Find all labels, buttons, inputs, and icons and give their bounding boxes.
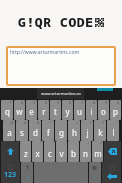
staticText: v	[59, 148, 64, 159]
button[interactable]: Shift	[1, 141, 19, 162]
staticText: e	[29, 106, 34, 117]
staticText: http://www.arturmartins.com	[10, 49, 80, 56]
button[interactable]: 9	[98, 100, 109, 120]
button[interactable]: :	[56, 141, 67, 162]
button[interactable]: 5	[50, 100, 61, 120]
staticText: 7	[81, 100, 84, 105]
button[interactable]: Backspace	[104, 141, 121, 162]
button[interactable]: 0	[110, 100, 121, 120]
staticText: *	[50, 120, 53, 125]
button[interactable]: Comma	[21, 162, 33, 183]
staticText: #	[24, 120, 27, 125]
staticText: l	[112, 127, 115, 138]
button[interactable]	[84, 88, 122, 99]
staticText: r	[42, 106, 46, 117]
staticText: j	[86, 127, 89, 138]
staticText: a	[7, 127, 12, 138]
button[interactable]: ;	[68, 141, 79, 162]
button[interactable]: @	[3, 120, 15, 141]
button[interactable]: 7	[74, 100, 85, 120]
button[interactable]: www.arturmartins.co	[37, 88, 84, 99]
staticText: '	[53, 141, 54, 146]
button[interactable]: "	[32, 141, 43, 162]
staticText: i	[90, 106, 93, 117]
staticText: k	[98, 127, 103, 138]
staticText: 123	[4, 170, 17, 180]
button[interactable]: )	[94, 120, 106, 141]
staticText: 5	[57, 100, 60, 105]
button[interactable]: Period	[89, 162, 101, 183]
staticText: !	[88, 141, 90, 146]
staticText: :	[64, 141, 66, 146]
button[interactable]: 123	[1, 162, 20, 183]
staticText: p	[113, 106, 118, 117]
staticText: www.arturmartins.co	[41, 91, 81, 96]
staticText: o	[101, 106, 106, 117]
staticText: u	[77, 106, 82, 117]
staticText: 1	[9, 100, 12, 105]
staticText: d	[33, 127, 38, 138]
staticText: g	[59, 127, 64, 138]
staticText: x	[35, 148, 40, 159]
staticText: ☻	[92, 165, 98, 171]
staticText: 3	[33, 100, 36, 105]
button[interactable]: '	[44, 141, 55, 162]
staticText: f	[47, 127, 50, 138]
staticText: ?	[100, 141, 102, 146]
button[interactable]: l	[107, 120, 119, 141]
staticText: 0	[117, 100, 120, 105]
staticText: 4	[45, 100, 48, 105]
staticText: c	[48, 148, 52, 159]
staticText: +	[76, 120, 79, 125]
staticText: -	[64, 120, 66, 125]
button[interactable]: http://www.arturmartins.com	[6, 46, 116, 86]
button[interactable]: -	[55, 120, 67, 141]
button[interactable]: z	[20, 141, 31, 162]
staticText: @	[10, 120, 14, 125]
staticText: t	[54, 106, 57, 117]
staticText: ,	[27, 170, 29, 180]
staticText: y	[65, 106, 70, 117]
button[interactable]: (	[81, 120, 93, 141]
staticText: "	[40, 141, 42, 146]
staticText: h	[72, 127, 77, 138]
staticText: m	[94, 148, 102, 159]
staticText: w	[16, 106, 23, 117]
staticText: &	[37, 120, 40, 125]
button[interactable]: 4	[38, 100, 49, 120]
staticText: G!QR CODE	[18, 13, 94, 31]
button[interactable]: Enter	[102, 162, 121, 183]
staticText: 6	[69, 100, 72, 105]
staticText: 8	[93, 100, 96, 105]
staticText: 2	[21, 100, 24, 105]
staticText: ;	[76, 141, 78, 146]
staticText: z	[24, 148, 28, 159]
staticText: s	[20, 127, 24, 138]
button[interactable]: 1	[1, 100, 13, 120]
button[interactable]: &	[29, 120, 41, 141]
staticText: 9	[105, 100, 108, 105]
staticText: )	[103, 120, 105, 125]
staticText: q	[5, 106, 10, 117]
button[interactable]: G!QR CODE	[18, 13, 104, 31]
staticText: n	[83, 148, 88, 159]
button[interactable]: 8	[86, 100, 97, 120]
staticText: .	[94, 171, 96, 181]
button[interactable]: +	[68, 120, 80, 141]
button[interactable]: 2	[14, 100, 25, 120]
button[interactable]: 3	[26, 100, 37, 120]
staticText: (	[90, 120, 92, 125]
button[interactable]: !	[80, 141, 91, 162]
button[interactable]: 6	[62, 100, 73, 120]
button[interactable]: ?	[92, 141, 103, 162]
button[interactable]: #	[16, 120, 28, 141]
button[interactable]: *	[42, 120, 54, 141]
staticText: b	[71, 148, 76, 159]
